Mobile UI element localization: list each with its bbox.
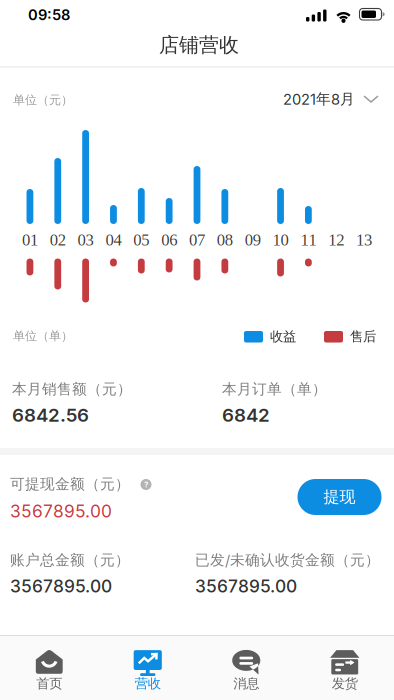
staticText: 本月订单（单） <box>222 380 327 398</box>
staticText: 04 <box>105 231 121 249</box>
staticText: 09 <box>245 231 261 249</box>
button[interactable]: 消息 <box>198 642 294 698</box>
staticText: 单位（单） <box>13 329 73 343</box>
staticText: 账户总金额（元） <box>10 551 130 569</box>
staticText: 09:58 <box>28 6 70 24</box>
staticText: ? <box>144 480 148 489</box>
staticText: 06 <box>161 231 177 249</box>
staticText: 店铺营收 <box>159 33 239 57</box>
staticText: 08 <box>217 231 233 249</box>
staticText: 消息 <box>233 675 259 692</box>
staticText: 3567895.00 <box>10 501 112 521</box>
button[interactable]: 2021年8月 <box>283 90 379 108</box>
staticText: 营收 <box>135 675 161 692</box>
staticText: 提现 <box>323 487 355 507</box>
staticText: 6842.56 <box>12 404 89 426</box>
button[interactable]: 营收 <box>100 642 196 698</box>
staticText: 单位（元） <box>13 93 73 107</box>
staticText: 首页 <box>36 675 62 692</box>
staticText: 已发/未确认收货金额（元） <box>195 551 380 569</box>
staticText: 07 <box>189 231 205 249</box>
staticText: 10 <box>272 231 288 249</box>
staticText: 11 <box>300 231 316 249</box>
staticText: 03 <box>78 231 94 249</box>
staticText: 可提现金额（元） <box>10 475 130 493</box>
staticText: 收益 <box>270 328 296 345</box>
staticText: 3567895.00 <box>195 576 297 596</box>
staticText: 售后 <box>350 328 376 345</box>
staticText: 2021年8月 <box>283 90 355 108</box>
staticText: 01 <box>22 231 38 249</box>
button[interactable]: 首页 <box>1 642 97 698</box>
staticText: 6842 <box>222 404 270 426</box>
button[interactable]: 提现 <box>297 479 381 515</box>
staticText: 13 <box>356 231 372 249</box>
staticText: 02 <box>50 231 66 249</box>
staticText: 05 <box>133 231 149 249</box>
staticText: 12 <box>328 231 344 249</box>
button[interactable]: 发货 <box>297 642 393 698</box>
staticText: 3567895.00 <box>10 576 112 596</box>
staticText: 本月销售额（元） <box>12 380 132 398</box>
staticText: 发货 <box>332 675 358 692</box>
button[interactable]: 金额说明 <box>140 479 151 490</box>
